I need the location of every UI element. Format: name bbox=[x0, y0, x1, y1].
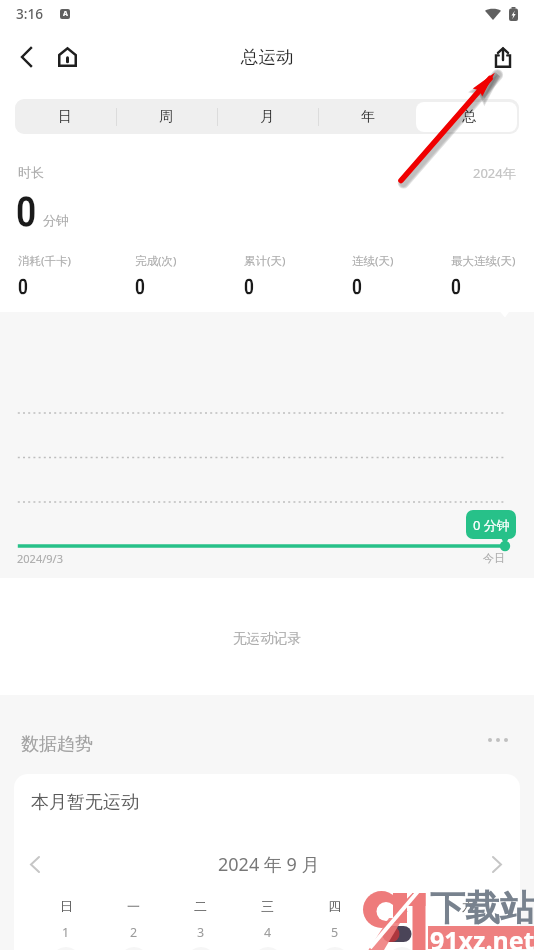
staticText: 2024/9/3 bbox=[17, 551, 63, 566]
staticText: 1 bbox=[62, 924, 70, 941]
staticText: 2024年 bbox=[473, 164, 516, 182]
staticText: 2 bbox=[130, 924, 138, 941]
staticText: 无运动记录 bbox=[233, 630, 301, 647]
staticText: 总 bbox=[462, 108, 476, 126]
staticText: 0 bbox=[135, 275, 145, 298]
button[interactable]: Share bbox=[481, 40, 525, 74]
staticText: 今日 bbox=[483, 551, 505, 565]
staticText: 时长 bbox=[18, 164, 44, 180]
staticText: 完成(次) bbox=[135, 253, 177, 269]
staticText: 一 bbox=[127, 898, 140, 914]
staticText: 累计(天) bbox=[244, 253, 286, 269]
staticText: 下载站 bbox=[430, 886, 534, 930]
staticText: 总运动 bbox=[241, 46, 294, 68]
staticText: 连续(天) bbox=[352, 253, 394, 269]
button[interactable]: Back bbox=[4, 40, 48, 74]
staticText: 本月暂无运动 bbox=[31, 791, 139, 814]
button[interactable]: Next month bbox=[481, 848, 513, 880]
staticText: 周 bbox=[159, 108, 173, 126]
button[interactable]: More options bbox=[482, 724, 514, 756]
staticText: 五 bbox=[395, 898, 408, 914]
staticText: 0 bbox=[352, 275, 362, 298]
staticText: 日 bbox=[60, 898, 73, 914]
staticText: 0 bbox=[18, 275, 28, 298]
staticText: 消耗(千卡) bbox=[18, 253, 71, 269]
staticText: 3:16 bbox=[16, 4, 44, 23]
button[interactable]: 周 bbox=[115, 99, 216, 134]
staticText: 分钟 bbox=[43, 212, 69, 228]
staticText: 三 bbox=[261, 898, 274, 914]
staticText: 0 bbox=[451, 275, 461, 298]
staticText: 数据趋势 bbox=[21, 733, 93, 756]
staticText: 5 bbox=[331, 924, 339, 941]
button[interactable]: 月 bbox=[216, 99, 317, 134]
button[interactable]: Home bbox=[45, 40, 89, 74]
staticText: 六 bbox=[462, 898, 475, 914]
staticText: 4 bbox=[264, 924, 272, 941]
staticText: 月 bbox=[260, 108, 274, 126]
staticText: 四 bbox=[328, 898, 341, 914]
staticText: 最大连续(天) bbox=[451, 253, 516, 269]
staticText: 2024 年 9 月 bbox=[218, 852, 320, 877]
button[interactable]: 年 bbox=[317, 99, 418, 134]
staticText: 0 bbox=[16, 188, 37, 236]
staticText: 0 bbox=[244, 275, 254, 298]
button[interactable]: Previous month bbox=[19, 848, 51, 880]
staticText: 二 bbox=[194, 898, 207, 914]
staticText: 91xz.net bbox=[430, 923, 534, 950]
staticText: 6 bbox=[398, 924, 406, 941]
staticText: 年 bbox=[361, 108, 375, 126]
button[interactable]: 日 bbox=[15, 99, 115, 134]
staticText: A bbox=[63, 9, 68, 19]
staticText: 7 bbox=[465, 924, 473, 941]
staticText: 日 bbox=[58, 108, 72, 126]
staticText: 0 分钟 bbox=[473, 516, 510, 534]
staticText: 3 bbox=[197, 924, 205, 941]
button[interactable]: 总 bbox=[418, 99, 519, 134]
